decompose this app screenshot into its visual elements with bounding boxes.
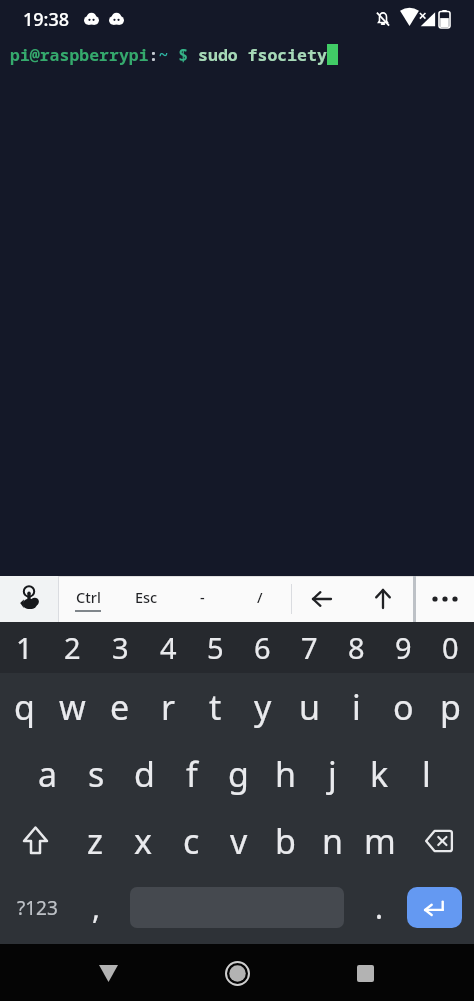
button[interactable]: x	[119, 807, 167, 874]
staticText: 0	[442, 628, 459, 667]
button[interactable]: l	[403, 740, 450, 807]
button[interactable]: -	[175, 576, 229, 622]
staticText: 1	[16, 628, 33, 667]
button[interactable]: Ctrl	[59, 576, 117, 622]
button[interactable]	[0, 576, 58, 622]
staticText: 5	[207, 628, 224, 667]
button[interactable]: r	[144, 673, 192, 740]
staticText: 2	[64, 628, 81, 667]
button[interactable]: k	[356, 740, 403, 807]
staticText: y	[254, 684, 272, 730]
button[interactable]: 7	[286, 622, 333, 673]
staticText: h	[275, 751, 297, 797]
button[interactable]: v	[215, 807, 262, 874]
button[interactable]: g	[215, 740, 262, 807]
button[interactable]: e	[96, 673, 144, 740]
button[interactable]	[352, 576, 413, 622]
button[interactable]: h	[262, 740, 309, 807]
staticText: 9	[395, 628, 412, 667]
button[interactable]	[0, 807, 71, 874]
staticText: 19:38	[23, 7, 70, 32]
staticText: d	[134, 751, 155, 797]
button[interactable]: j	[309, 740, 356, 807]
button[interactable]: b	[262, 807, 309, 874]
staticText: 4	[160, 628, 177, 667]
button[interactable]: m	[356, 807, 403, 874]
button[interactable]: a	[24, 740, 72, 807]
staticText: Ctrl	[76, 587, 101, 607]
staticText: s	[88, 751, 105, 797]
button[interactable]: 0	[427, 622, 474, 673]
button[interactable]: d	[120, 740, 168, 807]
staticText: .	[375, 887, 384, 928]
button[interactable]: Esc	[117, 576, 175, 622]
button[interactable]: p	[427, 673, 474, 740]
button[interactable]: w	[48, 673, 96, 740]
button[interactable]	[215, 951, 259, 995]
button[interactable]: ?123	[0, 874, 74, 941]
button[interactable]: 8	[333, 622, 380, 673]
staticText: r	[161, 684, 176, 730]
button[interactable]: 3	[96, 622, 144, 673]
button[interactable]	[407, 887, 462, 928]
button[interactable]: 5	[192, 622, 239, 673]
button[interactable]	[403, 807, 474, 874]
staticText: m	[364, 818, 396, 864]
staticText: f	[186, 751, 198, 797]
staticText: 7	[301, 628, 318, 667]
staticText: i	[352, 684, 361, 730]
button[interactable]: q	[0, 673, 48, 740]
staticText: /	[257, 587, 263, 607]
staticText: w	[59, 684, 86, 730]
staticText: g	[228, 751, 249, 797]
staticText: q	[14, 684, 35, 730]
staticText: t	[209, 684, 222, 730]
button[interactable]: 6	[239, 622, 286, 673]
staticText: b	[275, 818, 296, 864]
button[interactable]	[86, 951, 130, 995]
staticText: -	[200, 587, 205, 607]
staticText: u	[299, 684, 321, 730]
button[interactable]: y	[239, 673, 286, 740]
button[interactable]: t	[192, 673, 239, 740]
staticText: j	[328, 751, 337, 797]
button[interactable]: .	[356, 874, 403, 941]
button[interactable]: 9	[380, 622, 427, 673]
button[interactable]: o	[380, 673, 427, 740]
staticText: n	[322, 818, 344, 864]
staticText: a	[38, 751, 58, 797]
button[interactable]: /	[229, 576, 291, 622]
button[interactable]: u	[286, 673, 333, 740]
button[interactable]: s	[72, 740, 120, 807]
staticText: o	[393, 684, 414, 730]
button[interactable]: 1	[0, 622, 48, 673]
button[interactable]: c	[167, 807, 215, 874]
staticText: 8	[348, 628, 365, 667]
staticText: 3	[112, 628, 129, 667]
staticText: ,	[92, 887, 101, 928]
staticText: l	[422, 751, 431, 797]
staticText: e	[110, 684, 130, 730]
button[interactable]: 4	[144, 622, 192, 673]
button[interactable]	[292, 576, 352, 622]
staticText: z	[87, 818, 103, 864]
button[interactable]	[343, 951, 387, 995]
button[interactable]	[416, 576, 474, 622]
staticText: c	[183, 818, 200, 864]
staticText: 6	[254, 628, 271, 667]
staticText: v	[230, 818, 248, 864]
staticText: k	[370, 751, 389, 797]
staticText: x	[134, 818, 152, 864]
staticText: Esc	[135, 587, 158, 607]
button[interactable]: ,	[74, 874, 118, 941]
button[interactable]: z	[71, 807, 119, 874]
staticText: pi@raspberrypi:~ $ sudo fsociety	[10, 43, 327, 65]
staticText: ?123	[17, 895, 58, 921]
button[interactable]: i	[333, 673, 380, 740]
staticText: p	[440, 684, 461, 730]
button[interactable]: f	[168, 740, 215, 807]
button[interactable]: 2	[48, 622, 96, 673]
button[interactable]: n	[309, 807, 356, 874]
